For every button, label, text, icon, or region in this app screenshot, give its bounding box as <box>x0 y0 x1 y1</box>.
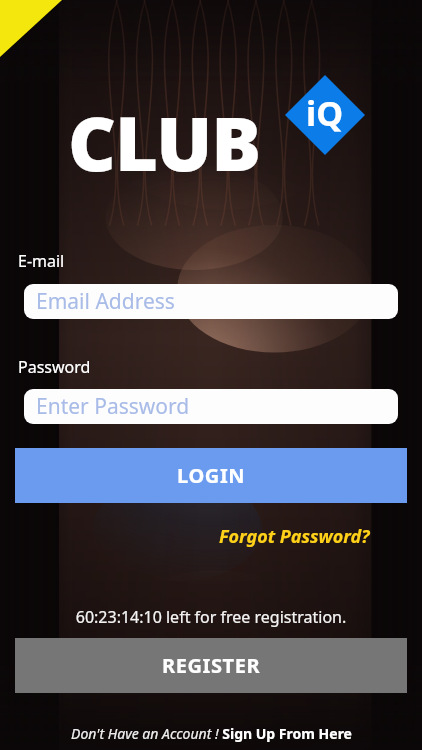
button[interactable]: Email Address <box>24 284 398 319</box>
staticText: Forgot Password? <box>219 524 370 549</box>
other: iQ logo <box>285 75 365 155</box>
staticText: Password <box>18 356 91 378</box>
button[interactable]: Don't Have an Account ! Sign Up From Her… <box>0 720 422 746</box>
staticText: E-mail <box>18 250 65 272</box>
staticText: Don't Have an Account ! Sign Up From Her… <box>71 724 352 743</box>
staticText: Email Address <box>36 287 175 316</box>
staticText: CLUB <box>68 92 261 193</box>
staticText: LOGIN <box>177 462 246 489</box>
button[interactable]: LOGIN <box>15 448 407 503</box>
staticText: REGISTER <box>162 652 261 679</box>
button[interactable]: REGISTER <box>15 638 407 693</box>
staticText: iQ <box>306 90 344 136</box>
button[interactable]: Forgot Password? <box>190 522 370 550</box>
button[interactable]: Enter Password <box>24 389 398 424</box>
staticText: Enter Password <box>36 392 190 421</box>
staticText: 60:23:14:10 left for free registration. <box>0 606 422 628</box>
